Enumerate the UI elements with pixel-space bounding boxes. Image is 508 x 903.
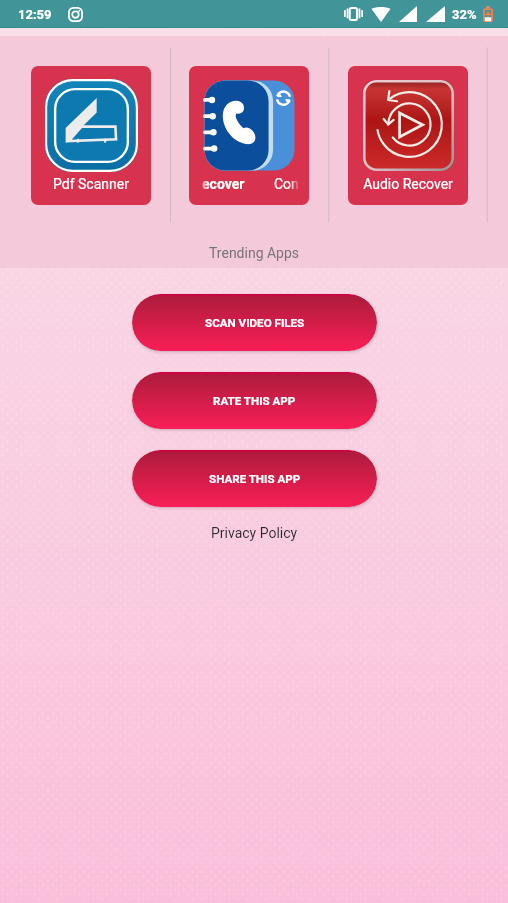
staticText: 12:59 xyxy=(18,7,52,22)
button[interactable]: Audio Recover xyxy=(348,66,468,205)
staticText: SCAN VIDEO FILES xyxy=(205,316,305,330)
button[interactable]: RATE THIS APP xyxy=(132,372,377,429)
button[interactable]: SHARE THIS APP xyxy=(132,450,377,507)
button[interactable]: SCAN VIDEO FILES xyxy=(132,294,377,351)
staticText: SHARE THIS APP xyxy=(209,472,301,486)
staticText: Audio Recover xyxy=(348,176,468,192)
button[interactable]: Pdf Scanner xyxy=(31,66,151,205)
staticText: RATE THIS APP xyxy=(213,394,296,408)
button[interactable]: ecover xyxy=(189,66,309,205)
staticText: Pdf Scanner xyxy=(31,176,151,192)
staticText: ecover xyxy=(202,176,245,192)
staticText: Trending Apps xyxy=(209,245,300,261)
staticText: 32% xyxy=(452,7,477,22)
staticText: Con xyxy=(274,176,299,192)
other: Instagram xyxy=(68,7,83,22)
button[interactable]: Privacy Policy xyxy=(211,525,298,541)
